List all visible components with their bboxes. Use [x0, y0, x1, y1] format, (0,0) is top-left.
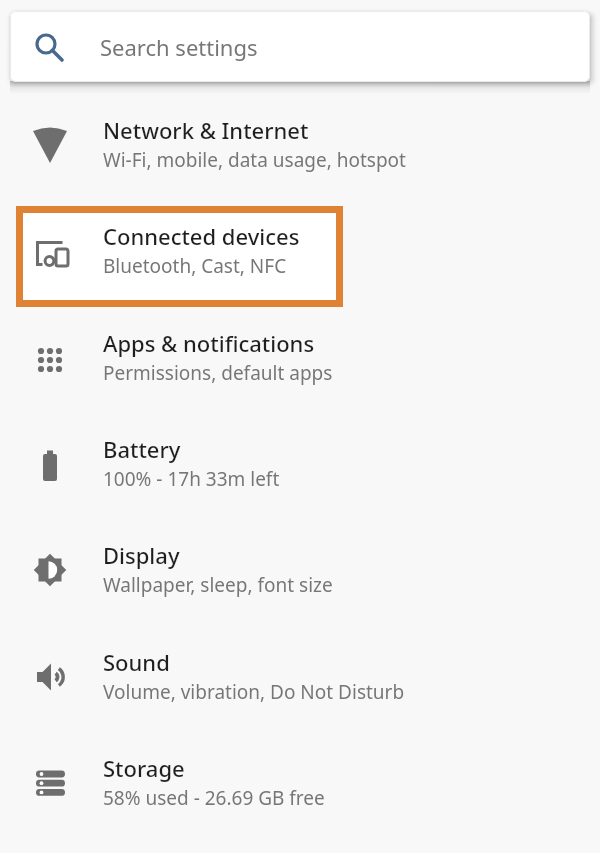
button[interactable]: Search settings	[10, 11, 590, 82]
button[interactable]: Connected devices	[0, 203, 600, 309]
staticText: Storage	[103, 753, 185, 783]
staticText: Connected devices	[103, 221, 300, 251]
staticText: 58% used - 26.69 GB free	[103, 785, 325, 811]
staticText: Apps & notifications	[103, 328, 315, 358]
staticText: Wi-Fi, mobile, data usage, hotspot	[103, 147, 406, 173]
button[interactable]: Display	[0, 522, 600, 628]
staticText: 100% - 17h 33m left	[103, 466, 280, 492]
staticText: Network & Internet	[103, 115, 309, 145]
staticText: Display	[103, 540, 180, 570]
staticText: Battery	[103, 434, 181, 464]
staticText: Search settings	[100, 32, 258, 62]
staticText: Volume, vibration, Do Not Disturb	[103, 679, 405, 705]
button[interactable]: Storage	[0, 735, 600, 841]
button[interactable]: Network & Internet	[0, 97, 600, 203]
staticText: Bluetooth, Cast, NFC	[103, 253, 287, 279]
button[interactable]: Apps & notifications	[0, 310, 600, 416]
staticText: Permissions, default apps	[103, 360, 333, 386]
staticText: Sound	[103, 647, 170, 677]
button[interactable]: Battery	[0, 416, 600, 522]
button[interactable]: Sound	[0, 629, 600, 735]
staticText: Wallpaper, sleep, font size	[103, 572, 333, 598]
